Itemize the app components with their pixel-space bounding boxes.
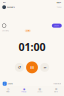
staticText: Ambient Rain xyxy=(53,83,61,85)
staticText: ▮▮▮ xyxy=(57,2,60,3)
staticText: ☰ xyxy=(55,88,57,91)
staticText: 9:41 xyxy=(3,2,6,3)
button[interactable]: ◉ xyxy=(16,88,32,93)
staticText: ◷ xyxy=(7,88,9,91)
staticText: Session 2 xyxy=(2,30,9,32)
staticText: Timer xyxy=(6,91,10,93)
button[interactable]: Timer mode xyxy=(2,24,6,27)
staticText: 25 min xyxy=(26,30,30,32)
staticText: Sound xyxy=(8,83,13,85)
staticText: ◉ xyxy=(23,88,25,91)
staticText: 01:00 xyxy=(18,40,45,54)
staticText: Start xyxy=(54,25,59,27)
staticText: Stats xyxy=(37,91,42,93)
staticText: ⏭ xyxy=(44,66,46,69)
staticText: Deep Work xyxy=(7,6,15,8)
button[interactable]: ☰ xyxy=(48,88,64,93)
button[interactable]: Reset xyxy=(15,63,24,72)
button[interactable]: ◷ xyxy=(0,88,16,93)
staticText: ▤ xyxy=(38,88,41,91)
button[interactable]: Pause xyxy=(26,61,38,73)
staticText: Focus xyxy=(21,91,26,93)
staticText: Today xyxy=(57,6,62,8)
staticText: More xyxy=(54,91,58,93)
staticText: ↺ xyxy=(18,65,21,70)
staticText: ♪ xyxy=(4,82,6,85)
button[interactable]: ♪ xyxy=(0,81,64,87)
button[interactable]: Skip xyxy=(40,63,49,72)
button[interactable]: ▤ xyxy=(32,88,48,93)
button[interactable]: Profile xyxy=(2,5,6,9)
button[interactable]: Start xyxy=(52,24,62,28)
staticText: ❚❚ xyxy=(30,66,34,69)
